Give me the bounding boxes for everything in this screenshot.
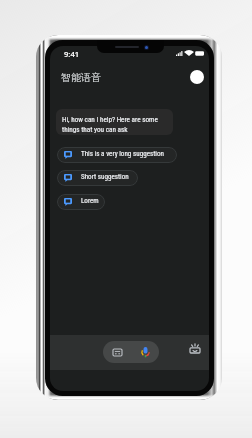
staticText: Short suggestion bbox=[81, 172, 129, 180]
button[interactable]: Voice input bbox=[131, 341, 159, 363]
staticText: 智能语音 bbox=[61, 71, 101, 84]
staticText: Hi, how can I help? Here are some things… bbox=[62, 115, 167, 134]
button[interactable]: This is a very long suggestion bbox=[57, 147, 177, 163]
button[interactable]: Hi, how can I help? Here are some things… bbox=[56, 109, 173, 135]
staticText: This is a very long suggestion bbox=[81, 149, 164, 157]
button[interactable]: Keyboard bbox=[103, 341, 131, 363]
staticText: 9:41 bbox=[64, 49, 80, 59]
button[interactable]: Lorem bbox=[57, 194, 105, 210]
button[interactable]: Account bbox=[190, 70, 204, 84]
button[interactable]: Short suggestion bbox=[57, 170, 138, 186]
staticText: Lorem bbox=[81, 196, 99, 204]
button[interactable]: Explore bbox=[188, 342, 202, 354]
